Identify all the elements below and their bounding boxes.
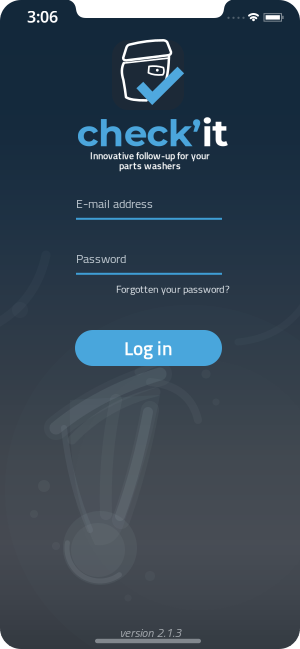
button[interactable]: Password: [76, 249, 222, 275]
staticText: Log in: [124, 333, 173, 363]
staticText: version 2.1.3: [119, 623, 181, 642]
button[interactable]: Log in: [75, 330, 222, 366]
staticText: Innovative follow-up for your: [90, 148, 210, 163]
staticText: Forgotten your password?: [116, 281, 230, 297]
button[interactable]: Forgotten your password?: [116, 281, 230, 297]
staticText: it: [202, 110, 228, 156]
staticText: parts washers: [119, 158, 181, 173]
staticText: Password: [76, 249, 126, 268]
button[interactable]: E-mail address: [76, 194, 222, 220]
staticText: 3:06: [27, 6, 58, 27]
staticText: check’: [77, 110, 202, 156]
staticText: E-mail address: [76, 194, 153, 213]
